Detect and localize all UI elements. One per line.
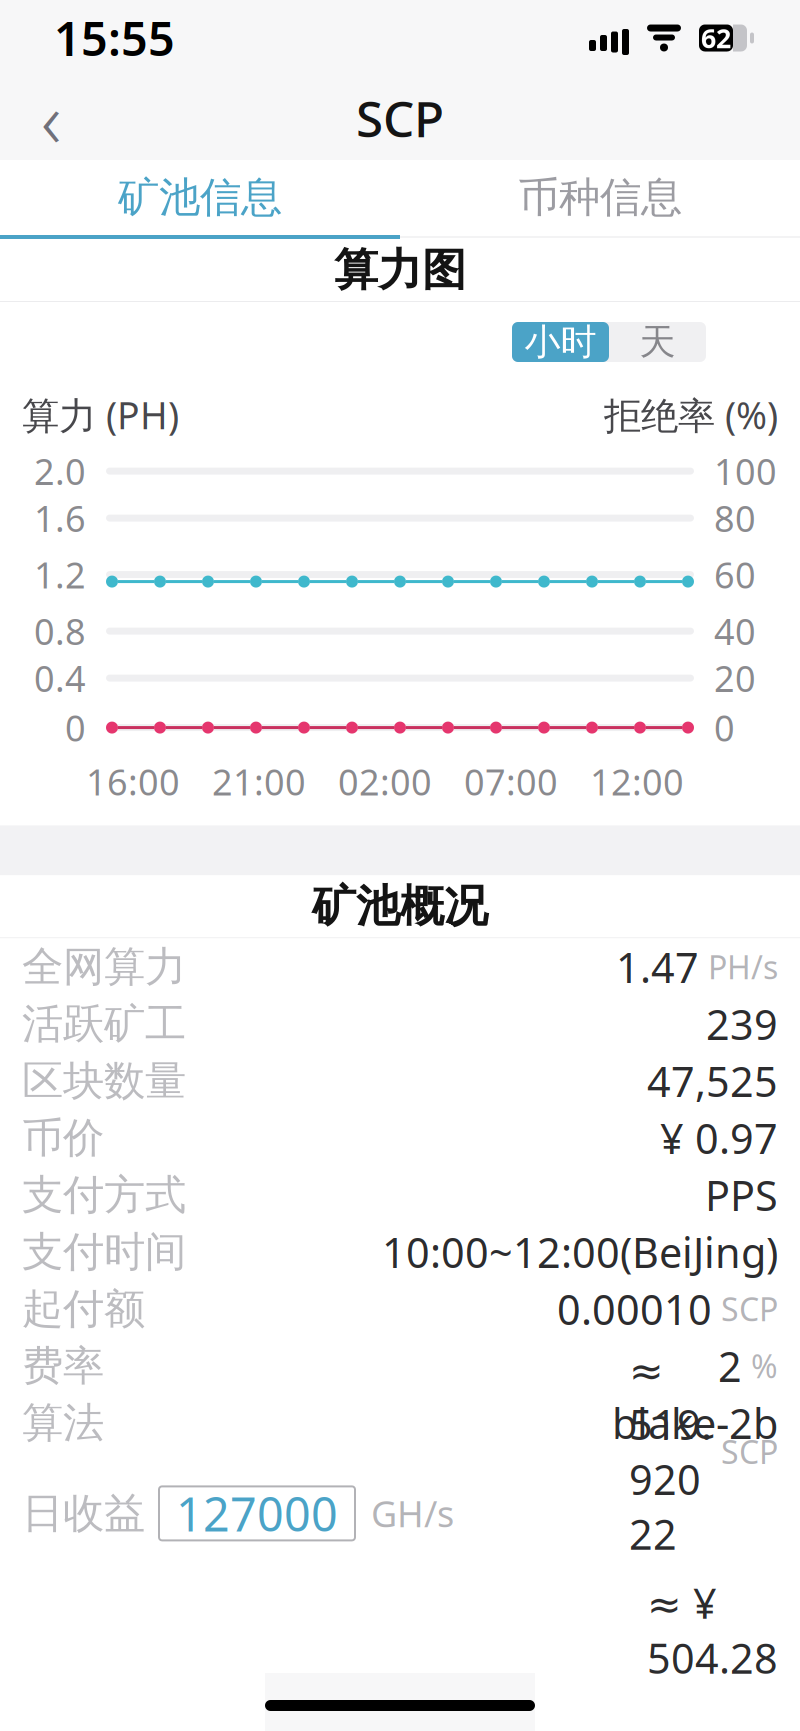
staticText: SCP [356,85,444,151]
staticText: 80 [714,494,756,542]
button[interactable]: 矿池信息 [0,160,400,235]
staticText: ≈ 519.92022 [629,1342,712,1561]
staticText: 2.0 [34,447,86,495]
staticText: 0 [65,704,86,751]
staticText: 矿池信息 [118,172,282,223]
staticText: ≈ ¥ 504.28 [647,1575,778,1685]
staticText: 支付时间 [22,1226,186,1277]
staticText: 0.4 [34,654,86,702]
staticText: 币种信息 [518,172,682,223]
button[interactable]: 天 [609,322,706,362]
staticText: 拒绝率 (%) [604,390,778,440]
staticText: 10:00~12:00(BeiJing) [382,1224,778,1279]
staticText: 60 [714,551,756,598]
staticText: 算力 (PH) [22,390,179,440]
button[interactable]: 127000 [159,1486,355,1540]
staticText: PPS [705,1167,778,1222]
staticText: SCP [721,1430,778,1473]
staticText: 0.8 [34,607,86,655]
staticText: 239 [706,996,778,1051]
staticText: 47,525 [647,1053,778,1108]
staticText: 区块数量 [22,1055,186,1106]
staticText: 12:00 [590,758,684,805]
staticText: PH/s [708,946,778,988]
staticText: GH/s [371,1489,454,1537]
button[interactable]: 币种信息 [400,160,800,235]
staticText: 起付额 [22,1283,145,1334]
button[interactable]: 小时 [512,322,609,362]
staticText: 矿池概况 [312,879,488,933]
staticText: 支付方式 [22,1169,186,1220]
button[interactable]: Back [12,79,90,157]
staticText: 15:55 [54,7,175,69]
staticText: ¥ 0.97 [660,1110,778,1165]
staticText: 20 [714,654,756,702]
staticText: 天 [639,320,675,364]
staticText: 算力图 [334,243,466,297]
staticText: 2 [718,1338,742,1393]
staticText: 1.47 [616,939,699,994]
staticText: ‹ [41,67,61,169]
staticText: 16:00 [86,758,180,805]
staticText: % [751,1345,778,1387]
staticText: 币价 [22,1112,104,1163]
staticText: 1.2 [34,551,86,598]
staticText: blake-2b [612,1395,778,1450]
staticText: 0 [714,704,735,751]
staticText: 127000 [176,1482,338,1544]
staticText: 40 [714,607,756,655]
staticText: 1.6 [34,494,86,542]
staticText: 21:00 [212,758,306,805]
staticText: SCP [721,1288,778,1330]
staticText: 02:00 [338,758,432,805]
staticText: 全网算力 [22,941,186,992]
staticText: 算法 [22,1397,104,1448]
staticText: 活跃矿工 [22,998,186,1049]
staticText: 100 [714,447,777,495]
staticText: 日收益 [22,1488,145,1539]
staticText: 小时 [524,320,596,364]
staticText: 费率 [22,1340,104,1391]
staticText: 62 [701,20,731,56]
staticText: 0.00010 [557,1281,712,1336]
staticText: 07:00 [464,758,558,805]
